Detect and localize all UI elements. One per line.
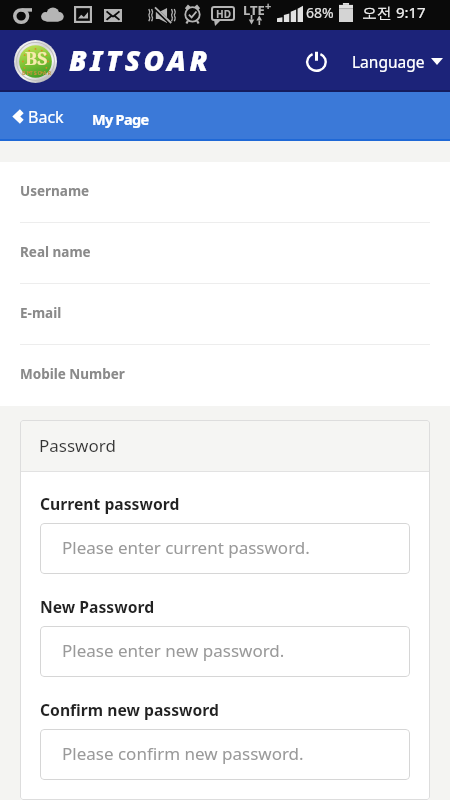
button[interactable]: Back xyxy=(0,92,76,141)
staticText: Please enter new password. xyxy=(62,639,285,662)
staticText: + xyxy=(265,0,272,13)
staticText: LTE xyxy=(243,1,265,19)
button[interactable]: E-mail xyxy=(0,284,450,345)
staticText: Confirm new password xyxy=(40,699,219,720)
staticText: HD xyxy=(216,7,231,21)
staticText: Back xyxy=(28,106,64,128)
button[interactable]: Logout xyxy=(296,41,336,81)
staticText: BS xyxy=(25,46,48,71)
staticText: New Password xyxy=(40,596,155,617)
staticText: My Page xyxy=(92,109,149,129)
staticText: BITSOAR xyxy=(22,69,52,76)
button[interactable]: Language xyxy=(346,43,449,80)
staticText: Mobile Number xyxy=(20,365,125,383)
staticText: BITSOAR xyxy=(69,41,212,79)
staticText: Please enter current password. xyxy=(62,536,310,559)
button[interactable]: Mobile Number xyxy=(0,345,450,406)
button[interactable]: Please enter new password. xyxy=(40,626,410,677)
staticText: Username xyxy=(20,182,90,200)
staticText: Language xyxy=(352,51,425,72)
staticText: Real name xyxy=(20,243,91,261)
staticText: Password xyxy=(39,434,116,457)
button[interactable]: Please enter current password. xyxy=(40,523,410,574)
staticText: 오전 9:17 xyxy=(362,2,426,22)
staticText: Please confirm new password. xyxy=(62,742,304,765)
staticText: 68% xyxy=(306,3,334,22)
button[interactable]: Real name xyxy=(0,223,450,284)
button[interactable]: Username xyxy=(0,162,450,223)
staticText: Current password xyxy=(40,493,180,514)
staticText: E-mail xyxy=(20,304,62,322)
button[interactable]: Please confirm new password. xyxy=(40,729,410,780)
